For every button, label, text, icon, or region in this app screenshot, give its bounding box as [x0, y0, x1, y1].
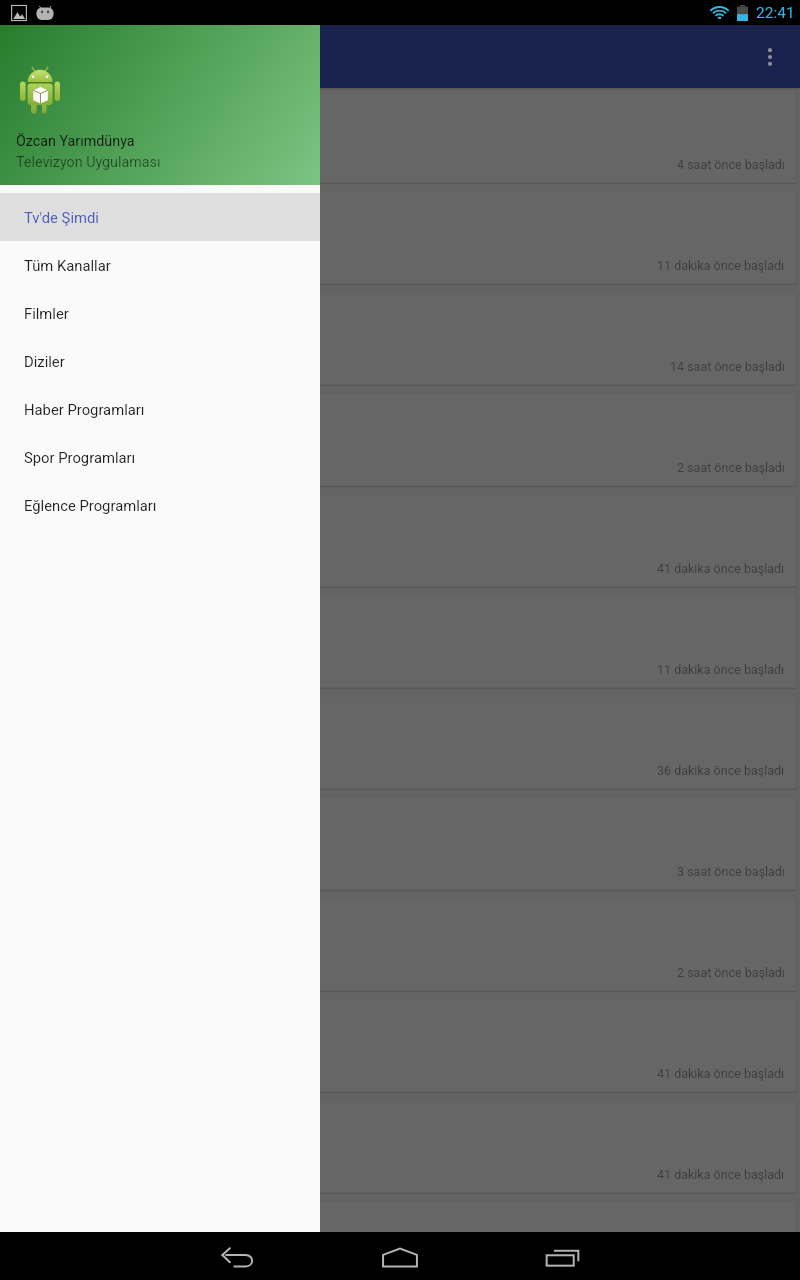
- button[interactable]: Filmler: [0, 289, 320, 337]
- button[interactable]: 12 dakika önce başladı: [3, 1201, 797, 1232]
- button[interactable]: 2 saat önce başladı: [3, 393, 797, 487]
- staticText: 14 saat önce başladı: [670, 359, 785, 374]
- button[interactable]: Diziler: [0, 337, 320, 385]
- button[interactable]: Haber Programları: [0, 385, 320, 433]
- button[interactable]: Tüm Kanallar: [0, 241, 320, 289]
- staticText: 41 dakika önce başladı: [657, 561, 785, 576]
- button[interactable]: Tv'de Şimdi: [0, 193, 320, 241]
- staticText: Haber Programları: [24, 401, 145, 418]
- staticText: 2 saat önce başladı: [677, 965, 785, 980]
- staticText: 11 dakika önce başladı: [657, 662, 785, 677]
- staticText: Tv'de Şimdi: [24, 209, 99, 226]
- button[interactable]: 41 dakika önce başladı: [3, 999, 797, 1093]
- staticText: 4 saat önce başladı: [677, 157, 785, 172]
- button[interactable]: 2 saat önce başladı: [3, 898, 797, 992]
- button[interactable]: 36 dakika önce başladı: [3, 696, 797, 790]
- button[interactable]: 11 dakika önce başladı: [3, 191, 797, 285]
- staticText: Eğlence Programları: [24, 497, 157, 514]
- staticText: Özcan Yarımdünya: [16, 133, 135, 150]
- staticText: 41 dakika önce başladı: [657, 1167, 785, 1182]
- staticText: Filmler: [24, 305, 69, 322]
- button[interactable]: Eğlence Programları: [0, 481, 320, 529]
- staticText: 22:41: [756, 4, 795, 22]
- button[interactable]: 3 saat önce başladı: [3, 797, 797, 891]
- staticText: 11 dakika önce başladı: [657, 258, 785, 273]
- button[interactable]: Back: [157, 1232, 319, 1280]
- staticText: Diziler: [24, 353, 65, 370]
- staticText: Spor Programları: [24, 449, 136, 466]
- staticText: Televizyon Uygulaması: [16, 154, 161, 171]
- button[interactable]: 41 dakika önce başladı: [3, 1100, 797, 1194]
- button[interactable]: 4 saat önce başladı: [3, 90, 797, 184]
- button[interactable]: 41 dakika önce başladı: [3, 494, 797, 588]
- staticText: Tüm Kanallar: [24, 257, 111, 274]
- button[interactable]: Home: [319, 1232, 481, 1280]
- staticText: 3 saat önce başladı: [677, 864, 785, 879]
- button[interactable]: Recent apps: [481, 1232, 643, 1280]
- button[interactable]: More options: [746, 33, 794, 81]
- staticText: 36 dakika önce başladı: [657, 763, 785, 778]
- button[interactable]: 11 dakika önce başladı: [3, 595, 797, 689]
- staticText: 2 saat önce başladı: [677, 460, 785, 475]
- button[interactable]: 14 saat önce başladı: [3, 292, 797, 386]
- button[interactable]: Spor Programları: [0, 433, 320, 481]
- staticText: 41 dakika önce başladı: [657, 1066, 785, 1081]
